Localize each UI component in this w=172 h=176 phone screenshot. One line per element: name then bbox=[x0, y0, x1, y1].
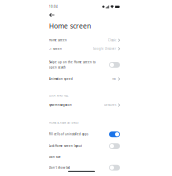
staticText: System navigation bbox=[49, 103, 72, 107]
button[interactable]: Fill cells of uninstalled apps bbox=[49, 131, 120, 137]
button[interactable]: -1 screen bbox=[49, 47, 120, 50]
staticText: -1 screen bbox=[49, 47, 62, 50]
staticText: Animation speed bbox=[49, 77, 73, 81]
button[interactable]: Lock Home screen layout bbox=[49, 143, 120, 149]
staticText: Lock Home screen layout bbox=[49, 144, 82, 148]
staticText: Home screen bbox=[49, 22, 91, 30]
button[interactable]: Animation speed bbox=[49, 77, 120, 81]
staticText: Fill cells of uninstalled apps bbox=[49, 132, 88, 136]
staticText: Classic bbox=[108, 38, 116, 42]
button[interactable]: System navigation bbox=[49, 103, 120, 107]
button[interactable]: Don't show text bbox=[49, 165, 120, 171]
button[interactable]: Home screen bbox=[49, 38, 120, 42]
staticText: Gestures bbox=[104, 103, 116, 107]
staticText: Icon size bbox=[49, 155, 61, 159]
staticText: Fast bbox=[112, 77, 116, 81]
staticText: 10:04 bbox=[49, 5, 58, 8]
staticText: open search bbox=[49, 66, 66, 69]
staticText: Don't show text bbox=[49, 166, 70, 169]
staticText: Swipe up on the Home screen to bbox=[49, 60, 96, 64]
button[interactable]: Back bbox=[49, 12, 55, 18]
button[interactable]: Swipe up on the Home screen to bbox=[49, 60, 120, 69]
button[interactable]: Icon size bbox=[49, 154, 120, 160]
staticText: HOME SCREEN SETTINGS bbox=[49, 121, 78, 124]
staticText: LOOK AND FEEL bbox=[49, 94, 68, 97]
staticText: Google Discover bbox=[93, 47, 116, 50]
staticText: Home screen bbox=[49, 38, 67, 42]
